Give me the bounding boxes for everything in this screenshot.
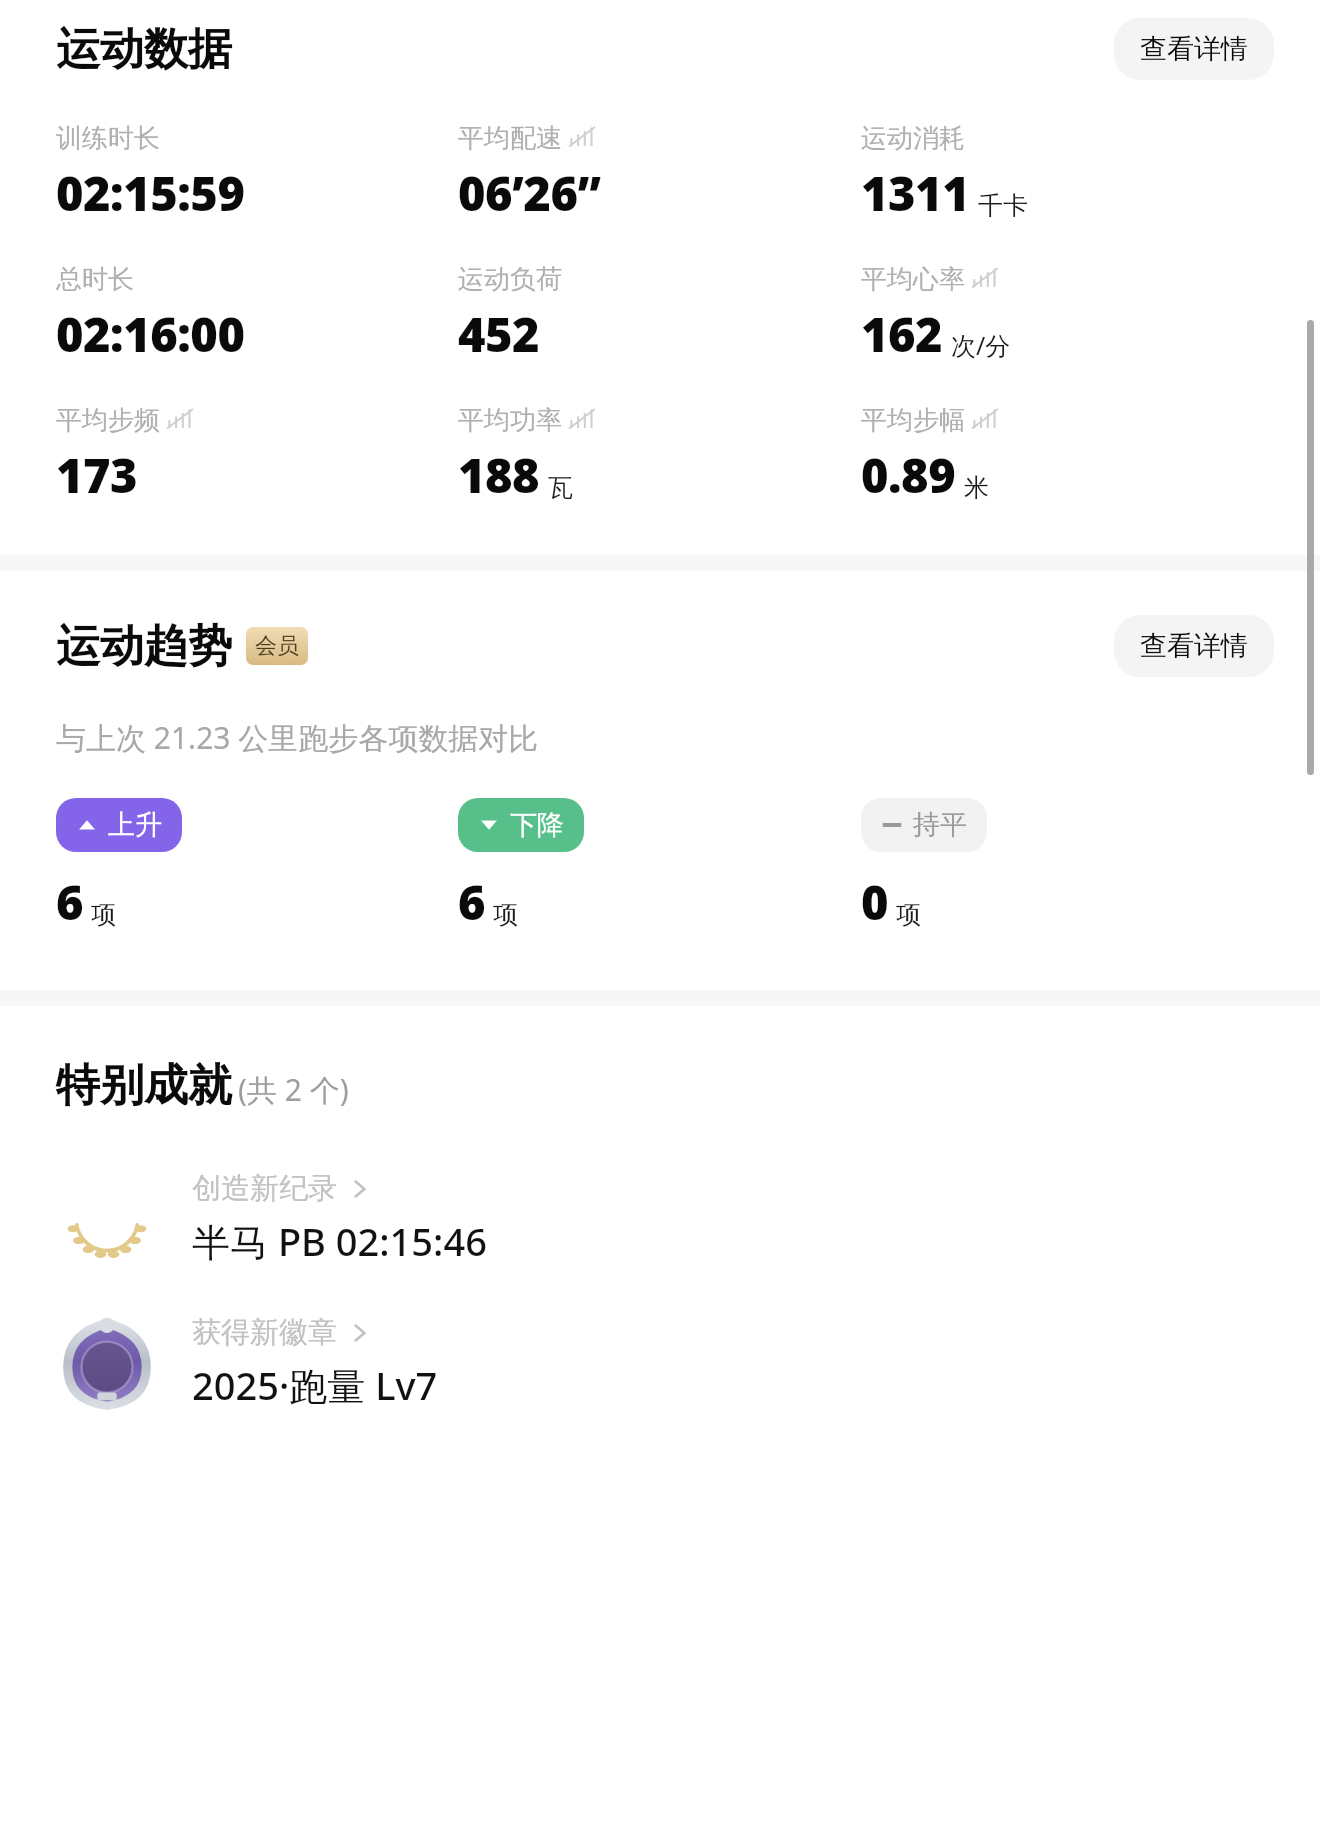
staticText: 162: [861, 302, 943, 366]
staticText: 运动消耗: [861, 122, 965, 155]
staticText: 452: [458, 302, 540, 366]
staticText: 项: [493, 899, 518, 930]
staticText: (共 2 个): [238, 1069, 349, 1110]
staticText: 02:16:00: [56, 302, 245, 366]
button[interactable]: 上升: [56, 798, 182, 852]
staticText: 项: [896, 899, 921, 930]
staticText: 6: [458, 870, 486, 934]
staticText: 获得新徽章: [192, 1314, 337, 1351]
staticText: 查看详情: [1140, 32, 1248, 66]
button[interactable]: 下降: [458, 798, 584, 852]
staticText: 下降: [510, 808, 564, 842]
staticText: 2025·跑量 Lv7: [192, 1359, 438, 1411]
staticText: 平均功率: [458, 404, 562, 437]
staticText: 运动趋势: [56, 619, 232, 674]
staticText: 0: [861, 870, 889, 934]
staticText: 运动负荷: [458, 263, 562, 296]
staticText: 运动数据: [56, 22, 232, 77]
button[interactable]: 持平: [861, 798, 987, 852]
staticText: 会员: [255, 632, 299, 660]
staticText: 次/分: [951, 328, 1011, 362]
staticText: 训练时长: [56, 122, 160, 155]
staticText: 上升: [108, 808, 162, 842]
staticText: 千卡: [978, 190, 1028, 221]
staticText: 特别成就: [56, 1058, 232, 1113]
button[interactable]: 创造新纪录: [0, 1159, 1320, 1277]
staticText: 查看详情: [1140, 629, 1248, 663]
staticText: 06’26”: [458, 161, 601, 225]
staticText: 1311: [861, 161, 970, 225]
staticText: 6: [56, 870, 84, 934]
staticText: 02:15:59: [56, 161, 245, 225]
staticText: 半马 PB 02:15:46: [192, 1215, 487, 1267]
staticText: 总时长: [56, 263, 134, 296]
staticText: 与上次 21.23 公里跑步各项数据对比: [56, 717, 539, 758]
staticText: 瓦: [548, 472, 573, 503]
staticText: 平均步频: [56, 404, 160, 437]
staticText: 项: [91, 899, 116, 930]
button[interactable]: 查看详情: [1114, 18, 1274, 80]
staticText: 188: [458, 443, 540, 507]
staticText: 米: [964, 472, 989, 503]
staticText: 平均配速: [458, 122, 562, 155]
staticText: 平均心率: [861, 263, 965, 296]
staticText: 0.89: [861, 443, 956, 507]
staticText: 持平: [913, 808, 967, 842]
staticText: 平均步幅: [861, 404, 965, 437]
staticText: 173: [56, 443, 138, 507]
button[interactable]: 查看详情: [1114, 615, 1274, 677]
staticText: 创造新纪录: [192, 1170, 337, 1207]
button[interactable]: 获得新徽章: [0, 1303, 1320, 1421]
